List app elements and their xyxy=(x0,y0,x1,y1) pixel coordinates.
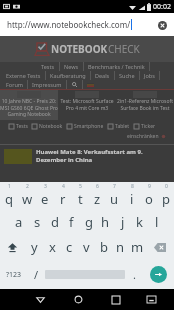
button[interactable]: Impressum xyxy=(32,80,62,89)
staticText: h xyxy=(101,213,110,231)
staticText: j xyxy=(121,213,125,231)
staticText: NOTEBOOK xyxy=(51,42,108,56)
button[interactable]: f xyxy=(63,209,80,234)
button[interactable]: 2 xyxy=(18,182,36,209)
staticText: q xyxy=(5,190,13,208)
button[interactable]: http://www.notebookcheck.com/ xyxy=(0,13,174,36)
button[interactable]: 9 xyxy=(140,182,157,209)
staticText: 4 xyxy=(62,183,65,190)
button[interactable]: Back xyxy=(21,289,59,310)
button[interactable]: x xyxy=(43,234,61,260)
staticText: 3 xyxy=(44,183,47,190)
button[interactable]: / xyxy=(27,260,45,289)
button[interactable]: Clear xyxy=(155,18,169,32)
button[interactable]: Smartphone xyxy=(67,123,104,130)
staticText: News xyxy=(64,63,79,70)
button[interactable]: Tests xyxy=(41,62,55,71)
staticText: o xyxy=(145,190,153,208)
staticText: http://www.notebookcheck.com/ xyxy=(7,19,131,30)
button[interactable]: Tablet xyxy=(108,123,130,130)
button[interactable]: Notebook xyxy=(32,123,63,130)
button[interactable]: Shift xyxy=(0,234,25,260)
button[interactable]: 7 xyxy=(106,182,123,209)
staticText: einschränken xyxy=(127,133,159,140)
staticText: 1 xyxy=(8,183,11,190)
staticText: c xyxy=(66,238,73,256)
button[interactable]: Go xyxy=(150,266,167,283)
staticText: k xyxy=(136,213,143,231)
staticText: Deals xyxy=(95,72,110,79)
button[interactable]: Externe Tests xyxy=(6,71,41,80)
staticText: 6 xyxy=(96,183,99,190)
staticText: d xyxy=(51,213,59,231)
button[interactable]: 3 xyxy=(36,182,54,209)
button[interactable]: Recents xyxy=(97,289,135,310)
button[interactable]: 2in1-Referenz Microsoft Surface Book im … xyxy=(116,90,174,120)
button[interactable]: Suche xyxy=(119,71,135,80)
button[interactable]: h xyxy=(97,209,114,234)
button[interactable]: Backspace xyxy=(146,234,174,260)
staticText: f xyxy=(69,213,74,231)
staticText: Smartphone xyxy=(74,123,104,130)
staticText: Jobs xyxy=(144,72,155,79)
button[interactable]: n xyxy=(112,234,129,260)
button[interactable]: v xyxy=(78,234,95,260)
button[interactable]: s xyxy=(28,209,46,234)
button[interactable]: 1 xyxy=(0,182,18,209)
button[interactable]: d xyxy=(46,209,63,234)
staticText: l xyxy=(155,213,159,231)
button[interactable]: 0 xyxy=(157,182,174,209)
staticText: p xyxy=(162,190,170,208)
button[interactable]: Deals xyxy=(95,71,110,80)
button[interactable]: News xyxy=(64,62,79,71)
staticText: r xyxy=(60,190,66,208)
button[interactable]: Search xyxy=(72,82,77,87)
staticText: Benchmarks / Technik xyxy=(88,63,145,70)
button[interactable]: Ticker xyxy=(134,123,156,130)
button[interactable]: j xyxy=(114,209,131,234)
button[interactable]: 4 xyxy=(54,182,72,209)
button[interactable]: l xyxy=(148,209,165,234)
staticText: Impressum xyxy=(32,81,62,88)
staticText: Huawei Mate 8: Verkaufsstart am 9. Dezem… xyxy=(36,148,143,164)
staticText: g xyxy=(85,213,93,231)
button[interactable]: a xyxy=(10,209,28,234)
button[interactable]: 5 xyxy=(72,182,89,209)
button[interactable]: . xyxy=(125,260,143,289)
staticText: z xyxy=(94,190,101,208)
button[interactable]: m xyxy=(129,234,146,260)
button[interactable]: Hide keyboard xyxy=(135,289,168,310)
button[interactable]: k xyxy=(131,209,148,234)
staticText: Notebook xyxy=(39,123,63,130)
button[interactable]: 8 xyxy=(123,182,140,209)
button[interactable]: ?123 xyxy=(0,260,27,289)
staticText: Suche xyxy=(119,72,135,79)
button[interactable]: 6 xyxy=(89,182,106,209)
staticText: t xyxy=(78,190,83,208)
staticText: . xyxy=(133,267,136,282)
staticText: x xyxy=(49,238,56,256)
button[interactable]: y xyxy=(25,234,43,260)
button[interactable]: Tests xyxy=(9,123,28,130)
staticText: Test: Microsoft Surface Pro 4 mit Core m… xyxy=(60,98,114,111)
staticText: y xyxy=(31,238,38,256)
button[interactable]: Jobs xyxy=(144,71,155,80)
button[interactable]: b xyxy=(95,234,112,260)
staticText: v xyxy=(83,238,90,256)
staticText: 00:02 xyxy=(153,2,171,12)
button[interactable]: c xyxy=(61,234,78,260)
button[interactable]: Home xyxy=(59,289,97,310)
button[interactable]: g xyxy=(80,209,97,234)
staticText: Externe Tests xyxy=(6,72,41,79)
button[interactable]: Kaufberatung xyxy=(50,71,86,80)
staticText: Forum xyxy=(6,81,23,88)
staticText: Kaufberatung xyxy=(50,72,86,79)
button[interactable]: Test: Microsoft Surface Pro 4 mit Core m… xyxy=(58,90,116,120)
staticText: Tests xyxy=(41,63,55,70)
button[interactable]: Benchmarks / Technik xyxy=(88,62,145,71)
button[interactable]: Forum xyxy=(6,80,23,89)
staticText: s xyxy=(34,213,41,231)
staticText: 8 xyxy=(131,183,134,190)
button[interactable]: 10 Jahre NBC - Preis 20: MSI GS60 6QE Gh… xyxy=(0,90,58,120)
